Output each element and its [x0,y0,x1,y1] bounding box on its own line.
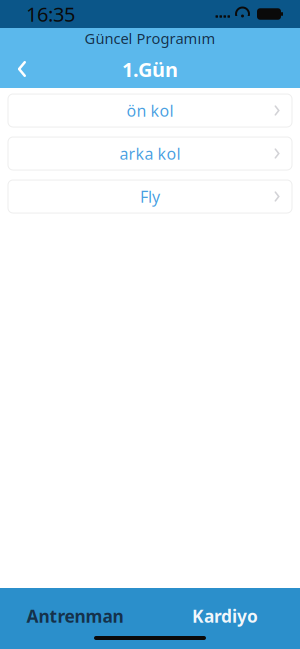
staticText: 1.Gün [122,56,178,83]
button[interactable]: arka kol [8,137,292,170]
staticText: Fly [140,186,160,207]
staticText: arka kol [119,143,180,164]
button[interactable]: Fly [8,180,292,213]
staticText: Kardiyo [192,604,258,627]
button[interactable]: Kardiyo [150,596,300,636]
staticText: 16:35 [26,1,75,27]
button[interactable]: Antrenman [0,596,150,636]
button[interactable]: Back [0,47,44,91]
button[interactable]: ön kol [8,94,292,127]
staticText: Antrenman [26,604,123,627]
staticText: ön kol [126,100,173,121]
staticText: Güncel Programım [84,28,215,48]
